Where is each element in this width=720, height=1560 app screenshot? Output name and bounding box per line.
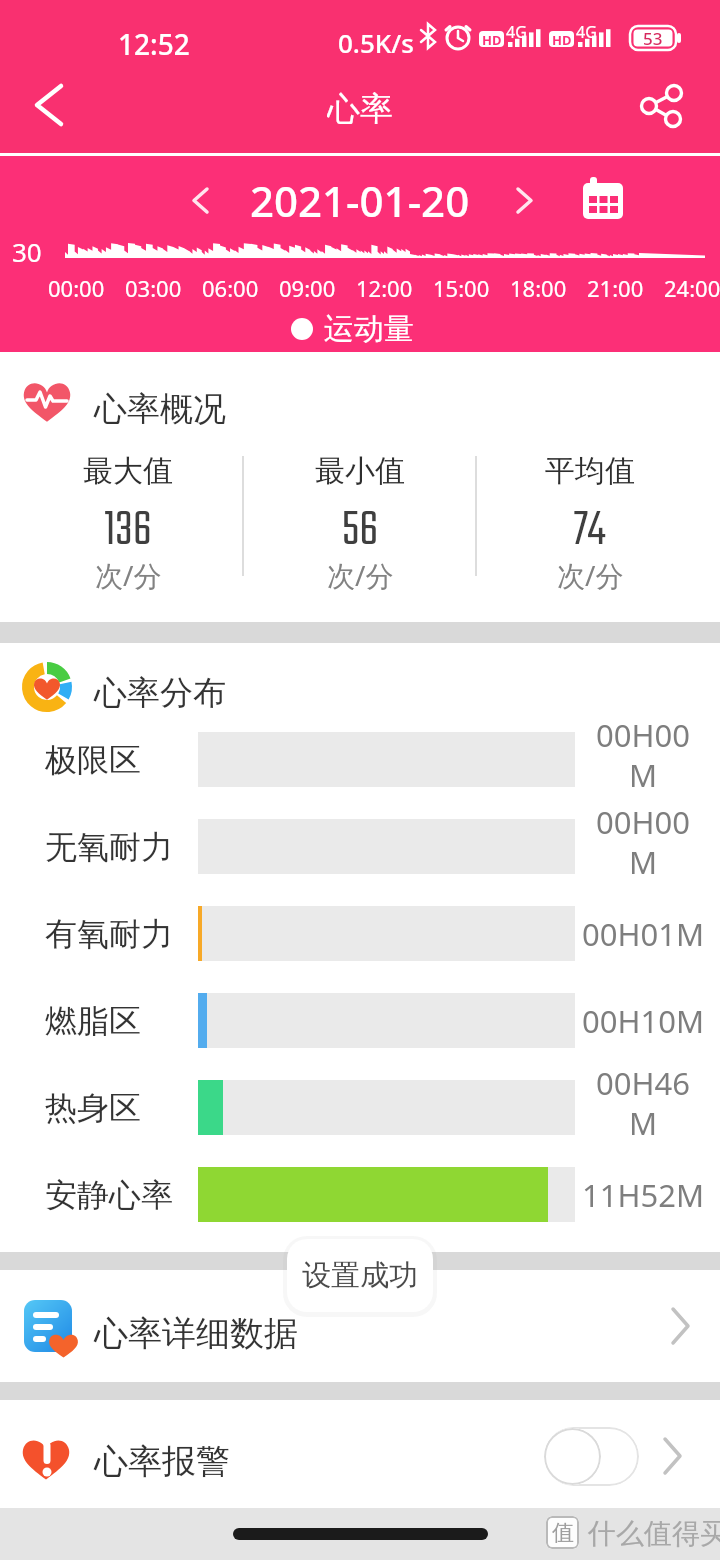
staticText: HD bbox=[552, 31, 572, 47]
staticText: 06:00 bbox=[202, 273, 259, 297]
staticText: 热身区 bbox=[45, 1088, 141, 1128]
staticText: 次/分 bbox=[95, 556, 162, 590]
staticText: 心率报警 bbox=[94, 1440, 230, 1483]
staticText: 有氧耐力 bbox=[45, 914, 173, 954]
staticText: 30 bbox=[12, 234, 42, 269]
button[interactable] bbox=[495, 170, 555, 230]
staticText: HD bbox=[482, 31, 502, 47]
staticText: 74 bbox=[574, 492, 606, 556]
staticText: 平均值 bbox=[545, 452, 635, 488]
staticText: 136 bbox=[104, 492, 152, 556]
staticText: 次/分 bbox=[557, 556, 624, 590]
staticText: 值 bbox=[552, 1519, 574, 1547]
staticText: 心率 bbox=[327, 88, 393, 128]
button[interactable] bbox=[544, 1427, 639, 1486]
staticText: 00H00 M bbox=[596, 714, 690, 794]
button[interactable]: 心率详细数据 bbox=[0, 1270, 720, 1382]
staticText: 21:00 bbox=[587, 273, 644, 297]
staticText: 00H01M bbox=[582, 913, 705, 955]
staticText: 53 bbox=[643, 27, 663, 50]
staticText: 15:00 bbox=[433, 273, 490, 297]
button[interactable] bbox=[20, 75, 80, 135]
staticText: 4G bbox=[576, 21, 597, 43]
staticText: 心率概况 bbox=[94, 388, 226, 430]
staticText: 设置成功 bbox=[302, 1257, 418, 1294]
staticText: 00H00 M bbox=[596, 801, 690, 881]
staticText: 56 bbox=[342, 492, 379, 556]
staticText: 03:00 bbox=[125, 273, 182, 297]
staticText: 运动量 bbox=[324, 310, 414, 348]
staticText: 00:00 bbox=[48, 273, 105, 297]
staticText: 无氧耐力 bbox=[45, 827, 173, 867]
staticText: 最大值 bbox=[83, 452, 173, 488]
button[interactable] bbox=[580, 176, 626, 222]
button[interactable] bbox=[635, 78, 691, 134]
button[interactable]: 心率报警 bbox=[0, 1400, 720, 1508]
staticText: 燃脂区 bbox=[45, 1001, 141, 1041]
staticText: 0.5K/s bbox=[338, 25, 414, 60]
staticText: 12:00 bbox=[356, 273, 413, 297]
staticText: 什么值得买 bbox=[588, 1516, 720, 1551]
staticText: 18:00 bbox=[510, 273, 567, 297]
staticText: 09:00 bbox=[279, 273, 336, 297]
staticText: 极限区 bbox=[45, 740, 141, 780]
staticText: 次/分 bbox=[327, 556, 394, 590]
staticText: 00H10M bbox=[582, 1000, 705, 1042]
button[interactable] bbox=[170, 170, 230, 230]
staticText: 12:52 bbox=[118, 25, 190, 63]
staticText: 24:00 bbox=[664, 273, 720, 297]
staticText: 4G bbox=[506, 21, 527, 43]
staticText: 11H52M bbox=[582, 1174, 705, 1216]
staticText: 安静心率 bbox=[45, 1175, 173, 1215]
staticText: 心率分布 bbox=[94, 672, 226, 714]
staticText: 2021-01-20 bbox=[250, 172, 470, 229]
staticText: 最小值 bbox=[315, 452, 405, 488]
staticText: 心率详细数据 bbox=[94, 1312, 298, 1355]
staticText: 00H46 M bbox=[596, 1062, 690, 1142]
